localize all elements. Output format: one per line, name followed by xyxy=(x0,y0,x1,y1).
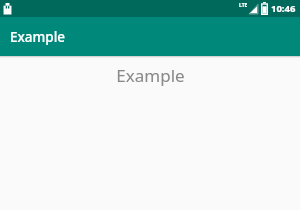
staticText: LTE xyxy=(239,2,248,9)
staticText: Example xyxy=(10,28,66,46)
button[interactable]: Example xyxy=(0,17,300,56)
staticText: 10:46 xyxy=(271,2,296,15)
staticText: Example xyxy=(116,64,185,87)
